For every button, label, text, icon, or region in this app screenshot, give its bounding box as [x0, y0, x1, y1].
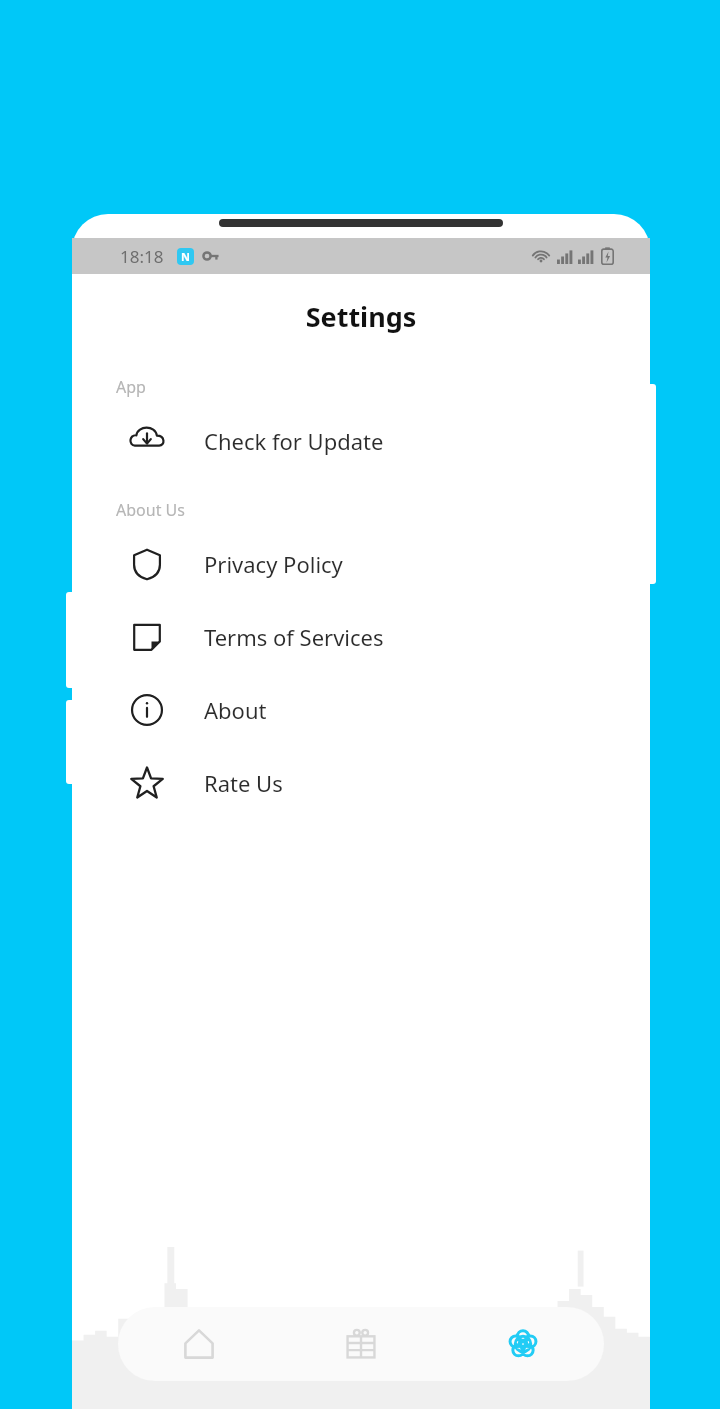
button[interactable]: Check for Update — [72, 404, 650, 477]
button[interactable]: About — [72, 673, 650, 746]
staticText: App — [116, 376, 146, 398]
staticText: N — [181, 249, 190, 264]
staticText: 18:18 — [120, 245, 164, 268]
button[interactable]: Settings — [442, 1307, 604, 1381]
staticText: Privacy Policy — [204, 549, 343, 579]
staticText: Settings — [72, 298, 650, 335]
staticText: About — [204, 695, 267, 725]
staticText: About Us — [116, 499, 185, 521]
button[interactable]: Terms of Services — [72, 600, 650, 673]
staticText: Rate Us — [204, 768, 283, 798]
button[interactable]: Gifts — [280, 1307, 442, 1381]
button[interactable]: Rate Us — [72, 746, 650, 819]
button[interactable]: Privacy Policy — [72, 527, 650, 600]
staticText: Terms of Services — [204, 622, 384, 652]
staticText: Check for Update — [204, 426, 384, 456]
button[interactable]: Home — [118, 1307, 280, 1381]
